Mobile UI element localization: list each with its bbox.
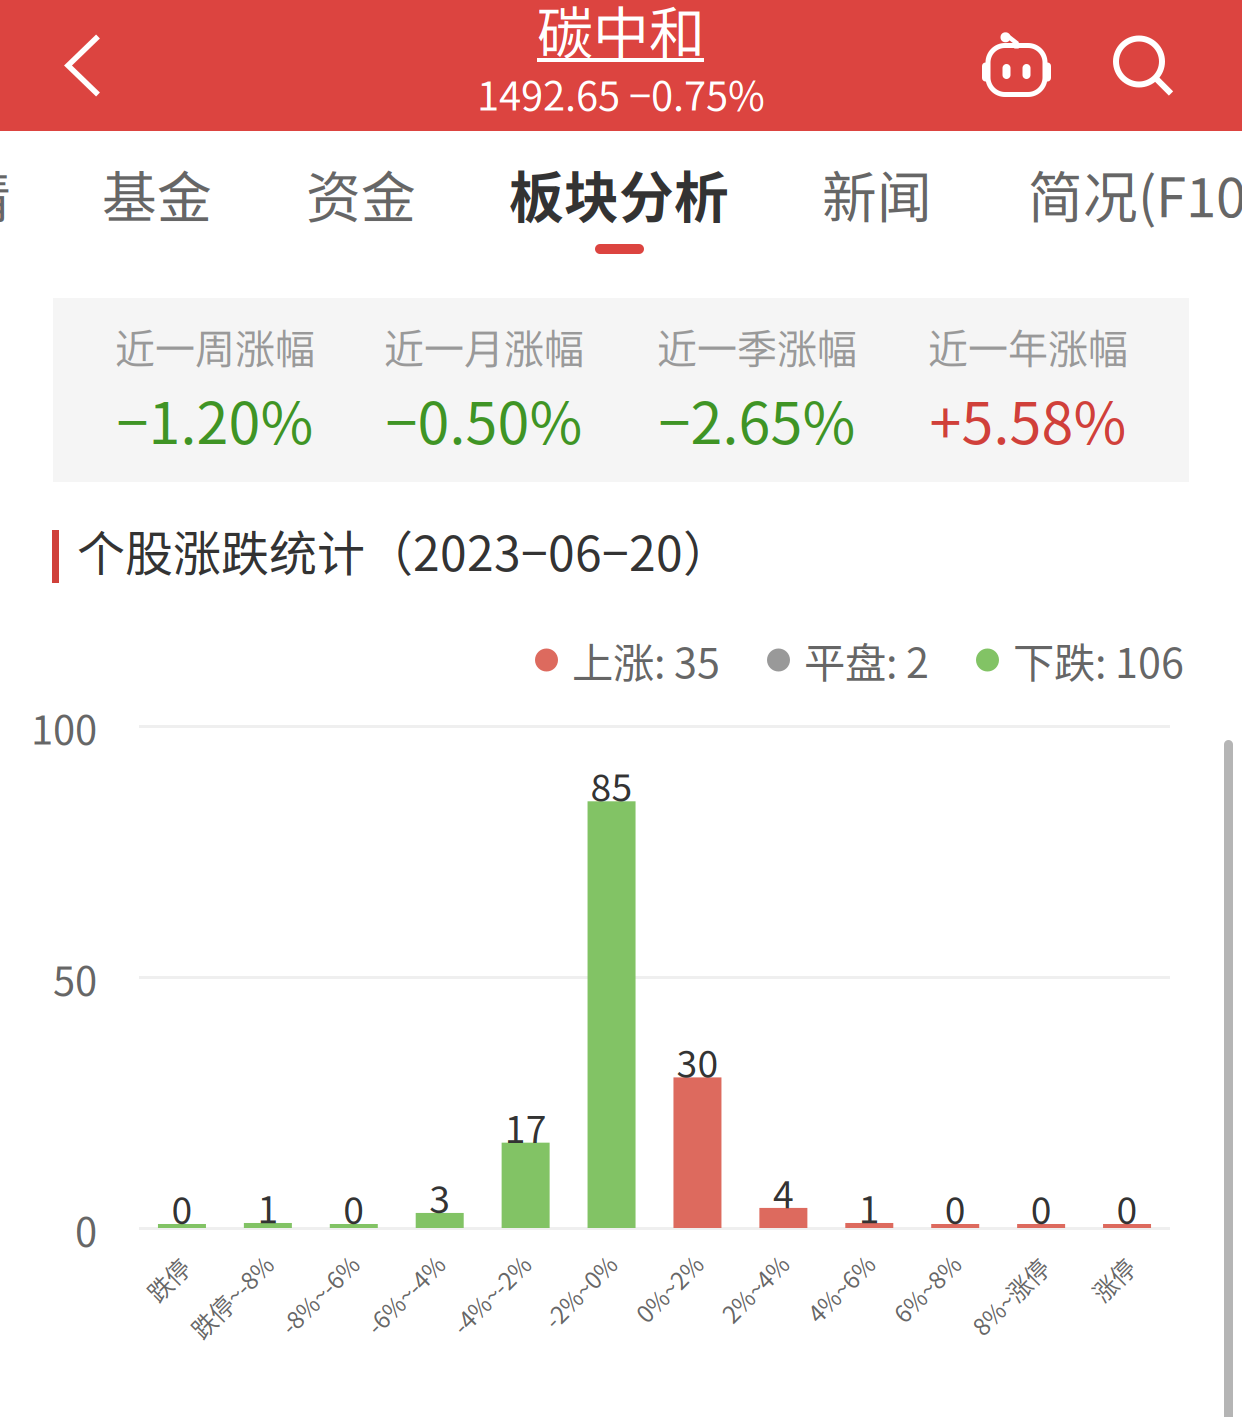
staticText: 资金 (306, 154, 416, 233)
staticText: −0.50% (385, 377, 582, 460)
staticText: 50 (53, 949, 97, 1007)
staticText: -6%~-4% (356, 1277, 455, 1312)
staticText: 0 (1031, 1181, 1052, 1235)
staticText: 17 (505, 1100, 547, 1154)
staticText: 近一年涨幅 (928, 317, 1128, 375)
staticText: 近一月涨幅 (384, 317, 584, 375)
staticText: 1492.65 −0.75% (477, 64, 765, 122)
staticText: 0 (1116, 1181, 1137, 1235)
button[interactable]: 新闻 (712, 137, 1042, 250)
staticText: 下跌: 106 (1013, 630, 1184, 690)
staticText: 简况(F10) (1028, 154, 1242, 233)
button[interactable]: Back (29, 0, 137, 131)
button[interactable]: Search (1090, 2, 1200, 133)
staticText: 0 (343, 1181, 364, 1235)
staticText: 新闻 (822, 154, 932, 233)
staticText: 8%~涨停 (962, 1279, 1058, 1314)
staticText: 30 (676, 1034, 718, 1088)
staticText: 涨停 (1089, 1262, 1137, 1297)
button[interactable]: 简况(F10) (981, 137, 1242, 250)
button[interactable]: 资金 (196, 137, 526, 250)
staticText: 100 (31, 698, 97, 756)
staticText: 近一周涨幅 (115, 317, 315, 375)
staticText: 1 (257, 1180, 278, 1234)
staticText: 0 (945, 1181, 966, 1235)
staticText: 碳中和 (537, 0, 705, 70)
staticText: 跌停~-8% (180, 1279, 284, 1314)
staticText: 1 (859, 1180, 880, 1234)
button[interactable]: 行情 (0, 137, 121, 250)
staticText: 行情 (0, 154, 11, 233)
staticText: -2%~0% (534, 1274, 625, 1309)
staticText: -8%~-6% (270, 1277, 369, 1312)
button[interactable]: 基金 (0, 137, 322, 250)
staticText: 3 (429, 1170, 450, 1224)
staticText: −2.65% (658, 377, 855, 460)
staticText: 基金 (102, 154, 212, 233)
staticText: 个股涨跌统计（2023−06−20） (77, 515, 731, 585)
staticText: 上涨: 35 (572, 630, 720, 690)
staticText: 6%~8% (885, 1271, 968, 1306)
staticText: 平盘: 2 (804, 630, 929, 690)
staticText: 板块分析 (509, 154, 729, 233)
button[interactable]: AI assistant (962, 0, 1072, 129)
staticText: 85 (590, 758, 632, 812)
staticText: 跌停 (144, 1262, 192, 1297)
staticText: +5.58% (929, 377, 1126, 460)
staticText: 0 (75, 1200, 97, 1258)
staticText: 0 (171, 1181, 192, 1235)
staticText: 4 (773, 1165, 794, 1219)
staticText: −1.20% (116, 377, 313, 460)
staticText: -4%~-2% (442, 1277, 541, 1312)
staticText: 2%~4% (713, 1271, 796, 1306)
staticText: 近一季涨幅 (657, 317, 857, 375)
button[interactable]: 板块分析 (454, 137, 784, 250)
staticText: 4%~6% (799, 1271, 882, 1306)
staticText: 0%~2% (627, 1271, 710, 1306)
